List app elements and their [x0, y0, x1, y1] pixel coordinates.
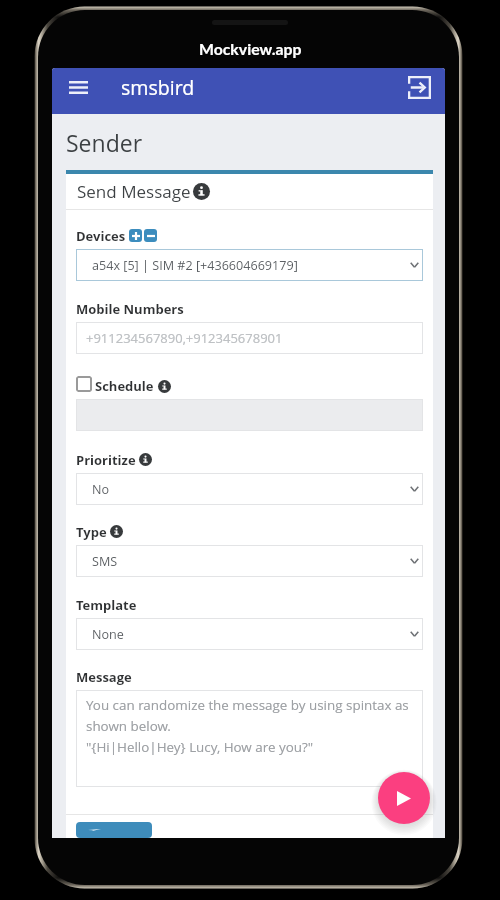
button[interactable]: Log out: [394, 68, 445, 106]
staticText: a54x [5] | SIM #2 [+436604669179]: [92, 257, 298, 274]
button[interactable]: Send: [76, 822, 152, 838]
staticText: Mockview.app: [199, 39, 302, 58]
staticText: Template: [76, 596, 137, 613]
staticText: No: [92, 481, 110, 498]
button[interactable]: Open navigation menu: [52, 68, 105, 106]
button[interactable]: Add device: [129, 229, 142, 242]
button[interactable]: SMS: [76, 545, 423, 577]
button[interactable]: None: [76, 618, 423, 650]
staticText: Sender: [66, 127, 143, 158]
button[interactable]: Send now: [378, 772, 430, 824]
staticText: None: [92, 626, 124, 643]
staticText: Mobile Numbers: [76, 300, 184, 317]
staticText: You can randomize the message by using s…: [86, 696, 415, 756]
button[interactable]: Remove device: [144, 229, 157, 242]
staticText: +911234567890,+912345678901: [86, 329, 283, 347]
button[interactable]: a54x [5] | SIM #2 [+436604669179]: [76, 249, 423, 281]
staticText: Schedule: [95, 377, 154, 395]
staticText: Devices: [76, 227, 126, 244]
staticText: smsbird: [121, 74, 195, 101]
button[interactable]: +911234567890,+912345678901: [76, 322, 423, 354]
button[interactable]: You can randomize the message by using s…: [76, 690, 423, 787]
button[interactable]: No: [76, 473, 423, 505]
staticText: Message: [76, 668, 132, 685]
staticText: Type: [76, 523, 107, 540]
button[interactable]: Schedule: [76, 376, 92, 392]
staticText: Send Message: [77, 180, 191, 203]
staticText: Prioritize: [76, 451, 136, 468]
staticText: SMS: [92, 553, 118, 570]
